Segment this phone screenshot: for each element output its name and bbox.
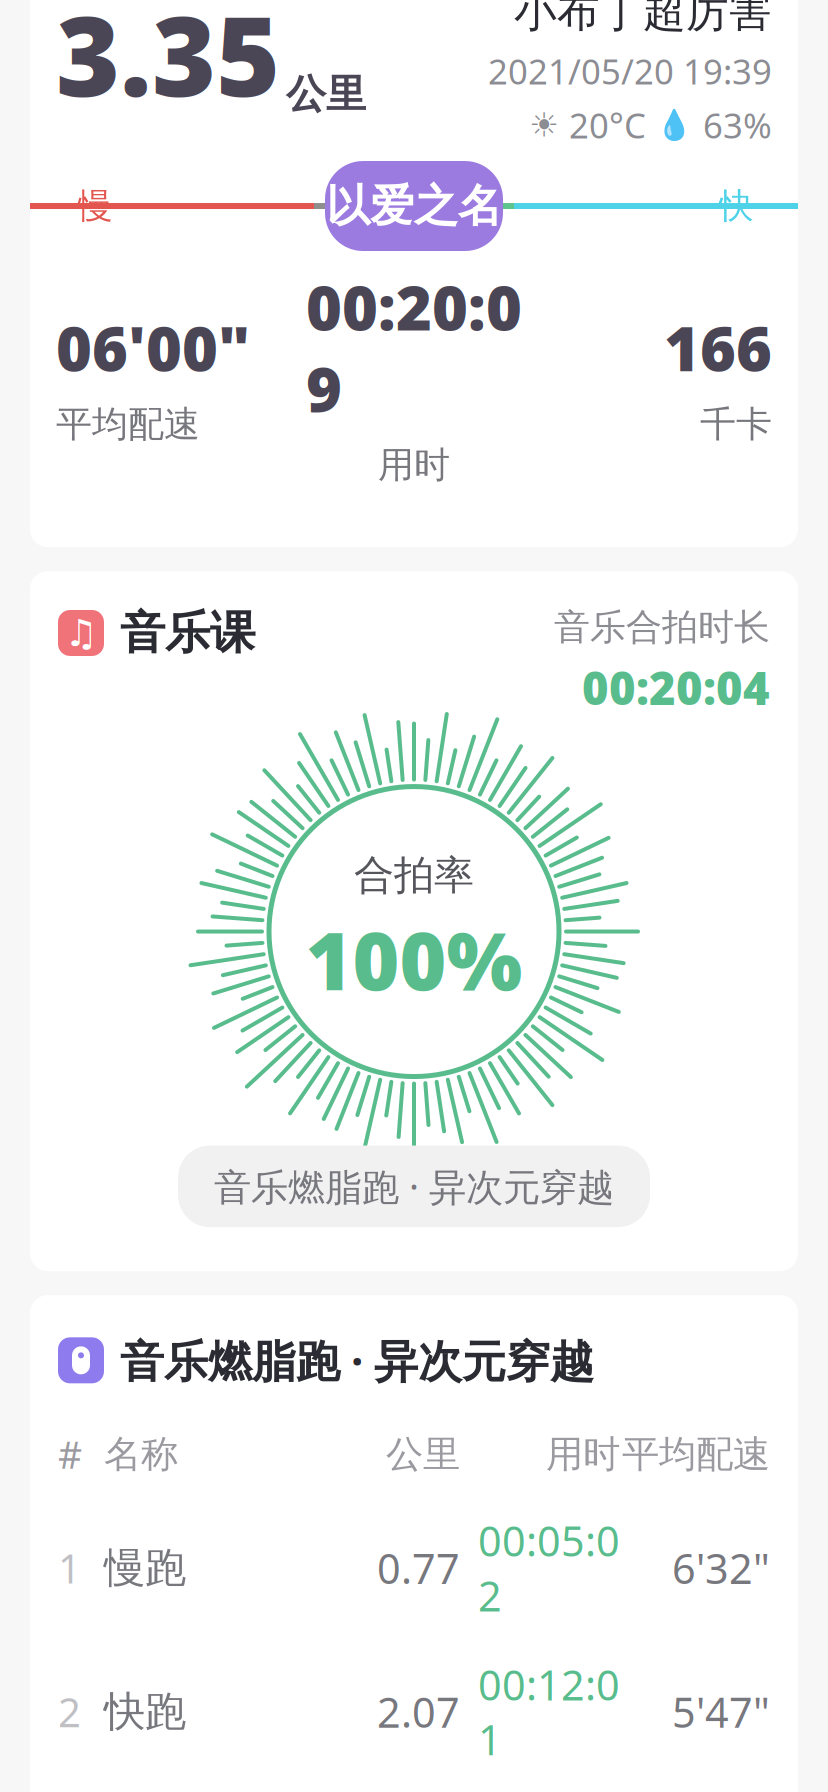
staticText: 快跑 [104,1686,186,1737]
staticText: 音乐燃脂跑 · 异次元穿越 [214,1162,614,1211]
staticText: 用时 [378,443,450,487]
staticText: 0.77 [377,1541,460,1595]
staticText: 00:12:01 [478,1657,620,1767]
staticText: 3.35 [56,0,280,127]
staticText: 00:20:09 [306,266,522,429]
staticText: 63% [703,102,772,148]
staticText: # [58,1430,82,1479]
staticText: 06'00" [56,307,250,388]
staticText: 慢 [78,185,113,227]
staticText: 2.07 [377,1684,460,1739]
staticText: 合拍率 [354,851,474,900]
staticText: 1 [58,1541,81,1595]
staticText: 小布丁超厉害 [514,0,772,38]
staticText: 166 [664,307,772,388]
staticText: 音乐燃脂跑 · 异次元穿越 [120,1331,594,1389]
staticText: 平均配速 [622,1431,770,1477]
staticText: 2021/05/20 19:39 [488,48,772,94]
staticText: 20°C [569,102,646,148]
staticText: 00:20:04 [582,657,770,718]
staticText: 平均配速 [56,402,200,446]
staticText: 公里 [386,1431,460,1477]
staticText: 快 [719,185,754,227]
staticText: 慢跑 [104,1543,186,1593]
staticText: 5'47" [672,1684,770,1739]
staticText: 音乐合拍时长 [554,605,770,649]
staticText: 用时 [546,1431,620,1477]
staticText: 100% [305,906,522,1012]
staticText: 00:05:02 [478,1513,620,1623]
staticText: 💧 [656,108,693,142]
staticText: 公里 [286,70,366,119]
staticText: 以爱之名 [326,179,502,233]
staticText: 音乐课 [120,605,255,661]
staticText: 名称 [104,1431,178,1477]
staticText: ♫ [64,612,97,654]
staticText: ☀ [529,106,559,144]
staticText: 2 [58,1685,81,1738]
staticText: 6'32" [672,1541,770,1595]
staticText: 千卡 [700,402,772,446]
